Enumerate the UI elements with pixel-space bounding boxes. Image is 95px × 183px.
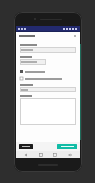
button[interactable] <box>20 70 76 73</box>
button[interactable] <box>20 98 76 125</box>
button[interactable]: Volume <box>65 151 75 158</box>
button[interactable] <box>20 47 76 53</box>
button[interactable]: Back <box>21 151 31 158</box>
button[interactable]: Close <box>73 34 77 38</box>
button[interactable] <box>57 144 77 149</box>
button[interactable] <box>20 77 76 80</box>
button[interactable] <box>19 144 33 149</box>
button[interactable]: Recents <box>36 151 46 158</box>
button[interactable] <box>20 59 46 65</box>
button[interactable] <box>20 87 76 92</box>
button[interactable]: Home <box>50 151 60 158</box>
